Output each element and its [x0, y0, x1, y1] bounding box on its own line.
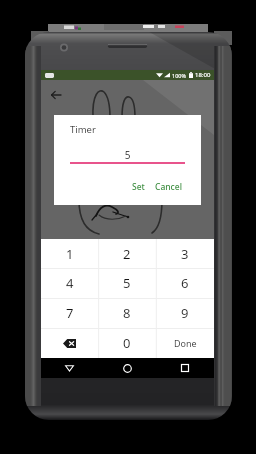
button[interactable]: Back: [41, 358, 98, 378]
staticText: Timer: [70, 123, 96, 136]
staticText: 0: [123, 334, 131, 352]
staticText: 8: [123, 304, 131, 322]
staticText: 1: [66, 245, 74, 263]
staticText: 3: [181, 245, 189, 263]
staticText: 2: [123, 245, 131, 263]
button[interactable]: 6: [156, 268, 214, 298]
staticText: Cancel: [155, 181, 182, 193]
staticText: 9: [181, 304, 189, 322]
button[interactable]: 8: [98, 298, 156, 328]
button[interactable]: 2: [98, 239, 156, 268]
button[interactable]: 5: [98, 268, 156, 298]
button[interactable]: Done: [156, 328, 214, 358]
other: Backspace: [63, 339, 76, 348]
button[interactable]: Home: [98, 358, 156, 378]
button[interactable]: 1: [41, 239, 98, 268]
staticText: Done: [174, 337, 197, 349]
button[interactable]: 0: [98, 328, 156, 358]
staticText: 5: [70, 148, 185, 162]
staticText: 4: [66, 274, 74, 292]
staticText: 18:00: [195, 71, 211, 79]
button[interactable]: 7: [41, 298, 98, 328]
button[interactable]: 3: [156, 239, 214, 268]
button[interactable]: Back: [47, 86, 65, 104]
staticText: 100%: [172, 72, 187, 79]
button[interactable]: 9: [156, 298, 214, 328]
staticText: 5: [123, 274, 131, 292]
button[interactable]: Backspace: [41, 328, 98, 358]
button[interactable]: 5: [70, 148, 185, 162]
button[interactable]: Set: [128, 178, 149, 196]
button[interactable]: Cancel: [151, 178, 186, 196]
staticText: 6: [181, 274, 189, 292]
staticText: 7: [66, 304, 74, 322]
staticText: Set: [132, 181, 145, 193]
button[interactable]: 4: [41, 268, 98, 298]
button[interactable]: Recent apps: [156, 358, 214, 378]
